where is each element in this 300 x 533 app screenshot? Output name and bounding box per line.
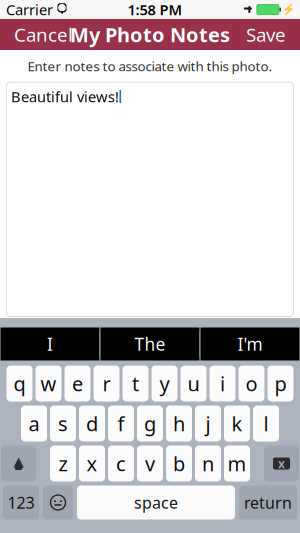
button[interactable]: I'm — [200, 327, 299, 360]
button[interactable]: i — [209, 365, 235, 401]
button[interactable]: h — [166, 405, 192, 441]
staticText: y — [159, 370, 169, 397]
staticText: i — [220, 370, 225, 397]
staticText: h — [173, 410, 185, 437]
staticText: c — [116, 450, 126, 477]
button[interactable]: l — [253, 405, 279, 441]
staticText: The — [134, 332, 165, 355]
staticText: v — [145, 450, 155, 477]
button[interactable]: 123 — [3, 485, 39, 519]
button[interactable]: t — [122, 365, 148, 401]
staticText: r — [102, 370, 110, 397]
button[interactable]: s — [50, 405, 76, 441]
staticText: a — [28, 410, 39, 437]
staticText: l — [263, 410, 268, 437]
staticText: k — [231, 410, 242, 437]
staticText: x — [278, 455, 285, 471]
button[interactable]: w — [35, 365, 61, 401]
button[interactable]: b — [166, 445, 192, 481]
staticText: t — [132, 370, 139, 397]
button[interactable]: f — [108, 405, 134, 441]
staticText: Carrier — [6, 0, 53, 19]
button[interactable]: d — [79, 405, 105, 441]
staticText: ⚡ — [282, 3, 295, 16]
staticText: z — [58, 450, 67, 477]
staticText: ▲ — [13, 454, 23, 469]
staticText: u — [187, 370, 199, 397]
staticText: n — [202, 450, 214, 477]
staticText: Beautiful views! — [11, 87, 119, 106]
staticText: My Photo Notes — [70, 21, 230, 48]
button[interactable]: j — [195, 405, 221, 441]
button[interactable]: q — [6, 365, 32, 401]
staticText: q — [13, 370, 25, 397]
button[interactable]: u — [180, 365, 206, 401]
button[interactable]: x — [79, 445, 105, 481]
staticText: I — [47, 332, 53, 355]
button[interactable]: y — [151, 365, 177, 401]
button[interactable]: z — [50, 445, 76, 481]
staticText: e — [72, 370, 83, 397]
staticText: o — [245, 370, 257, 397]
button[interactable]: a — [21, 405, 47, 441]
button[interactable]: m — [224, 445, 250, 481]
staticText: m — [227, 450, 246, 477]
button[interactable]: Shift — [1, 445, 36, 481]
staticText: p — [274, 370, 286, 397]
button[interactable]: o — [238, 365, 264, 401]
staticText: I'm — [237, 332, 262, 355]
staticText: s — [58, 410, 68, 437]
button[interactable]: Save — [236, 19, 296, 50]
staticText: x — [86, 450, 97, 477]
staticText: d — [86, 410, 98, 437]
button[interactable]: Emoji — [43, 485, 73, 519]
button[interactable]: c — [108, 445, 134, 481]
staticText: space — [134, 492, 178, 513]
staticText: w — [40, 370, 56, 397]
staticText: f — [117, 410, 124, 437]
button[interactable]: p — [267, 365, 293, 401]
staticText: j — [205, 410, 210, 437]
button[interactable]: space — [77, 485, 235, 519]
button[interactable]: r — [93, 365, 119, 401]
staticText: return — [244, 492, 292, 513]
button[interactable]: k — [224, 405, 250, 441]
button[interactable]: v — [137, 445, 163, 481]
button[interactable]: e — [64, 365, 90, 401]
staticText: b — [173, 450, 185, 477]
staticText: 123 — [7, 492, 34, 513]
staticText: g — [144, 410, 156, 437]
staticText: 1:58 PM — [127, 0, 182, 19]
button[interactable]: I — [0, 327, 99, 360]
button[interactable]: Delete — [264, 445, 299, 481]
button[interactable]: g — [137, 405, 163, 441]
button[interactable]: n — [195, 445, 221, 481]
staticText: Save — [246, 22, 286, 47]
button[interactable]: The — [100, 327, 199, 360]
staticText: Enter notes to associate with this photo… — [27, 57, 272, 75]
button[interactable]: Cancel — [4, 19, 83, 50]
button[interactable]: return — [239, 485, 297, 519]
staticText: Cancel — [14, 22, 73, 47]
